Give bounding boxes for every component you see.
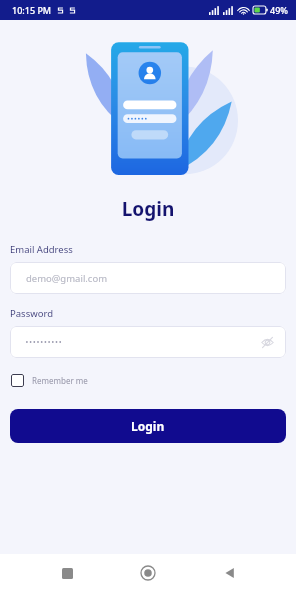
button[interactable]: Show password xyxy=(10,326,286,358)
button[interactable]: Home xyxy=(133,558,163,588)
staticText: Login xyxy=(0,196,296,222)
staticText: 49% xyxy=(270,4,288,16)
button[interactable]: Recent apps xyxy=(52,558,82,588)
button[interactable]: Remember me xyxy=(10,372,89,389)
staticText: Remember me xyxy=(32,375,88,386)
staticText: Email Address xyxy=(10,243,73,256)
button[interactable]: Login xyxy=(10,409,286,443)
staticText: Password xyxy=(10,307,53,320)
staticText: 10:15 PM xyxy=(12,4,52,16)
staticText: Login xyxy=(131,418,165,434)
button[interactable]: Back xyxy=(215,558,245,588)
button[interactable]: demo@gmail.com xyxy=(10,262,286,294)
button[interactable]: Show password xyxy=(258,333,276,351)
staticText: demo@gmail.com xyxy=(26,272,108,285)
